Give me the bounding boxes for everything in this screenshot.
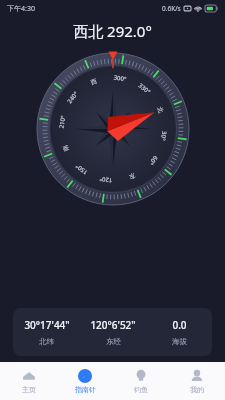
staticText: 120°6'52" [90,318,136,332]
staticText: 北纬 [39,337,54,346]
button[interactable]: 指南针 [57,362,113,400]
staticText: 西北 292.0° [73,21,152,41]
button[interactable]: 30°17'44" [13,308,212,356]
button[interactable]: 钓鱼 [113,362,169,400]
button[interactable]: 我的 [169,362,225,400]
staticText: 0.6K/s [162,4,181,13]
staticText: 东经 [106,337,121,346]
staticText: 海拔 [172,337,187,346]
staticText: 主页 [22,385,36,394]
staticText: 下午4:30 [7,4,35,14]
button[interactable]: 主页 [0,362,57,400]
staticText: 钓鱼 [134,385,148,394]
staticText: 我的 [190,385,204,394]
staticText: 0.0 [172,318,187,332]
staticText: 30°17'44" [24,318,70,332]
staticText: 指南针 [75,385,96,394]
